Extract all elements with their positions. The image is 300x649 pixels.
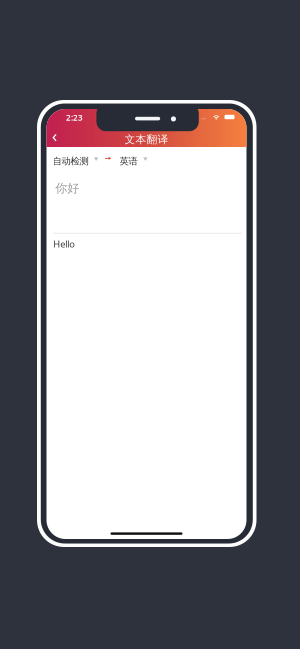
button[interactable]: 自动检测 [46, 151, 97, 169]
staticText: 文本翻译 [124, 133, 168, 146]
staticText: 2:23 [66, 112, 83, 123]
staticText: 自动检测 [53, 155, 89, 167]
button[interactable]: Back [46, 129, 63, 147]
button[interactable]: 英语 [114, 151, 148, 169]
staticText: 你好 [55, 181, 79, 196]
staticText: Hello [53, 238, 75, 250]
staticText: 英语 [120, 155, 138, 167]
